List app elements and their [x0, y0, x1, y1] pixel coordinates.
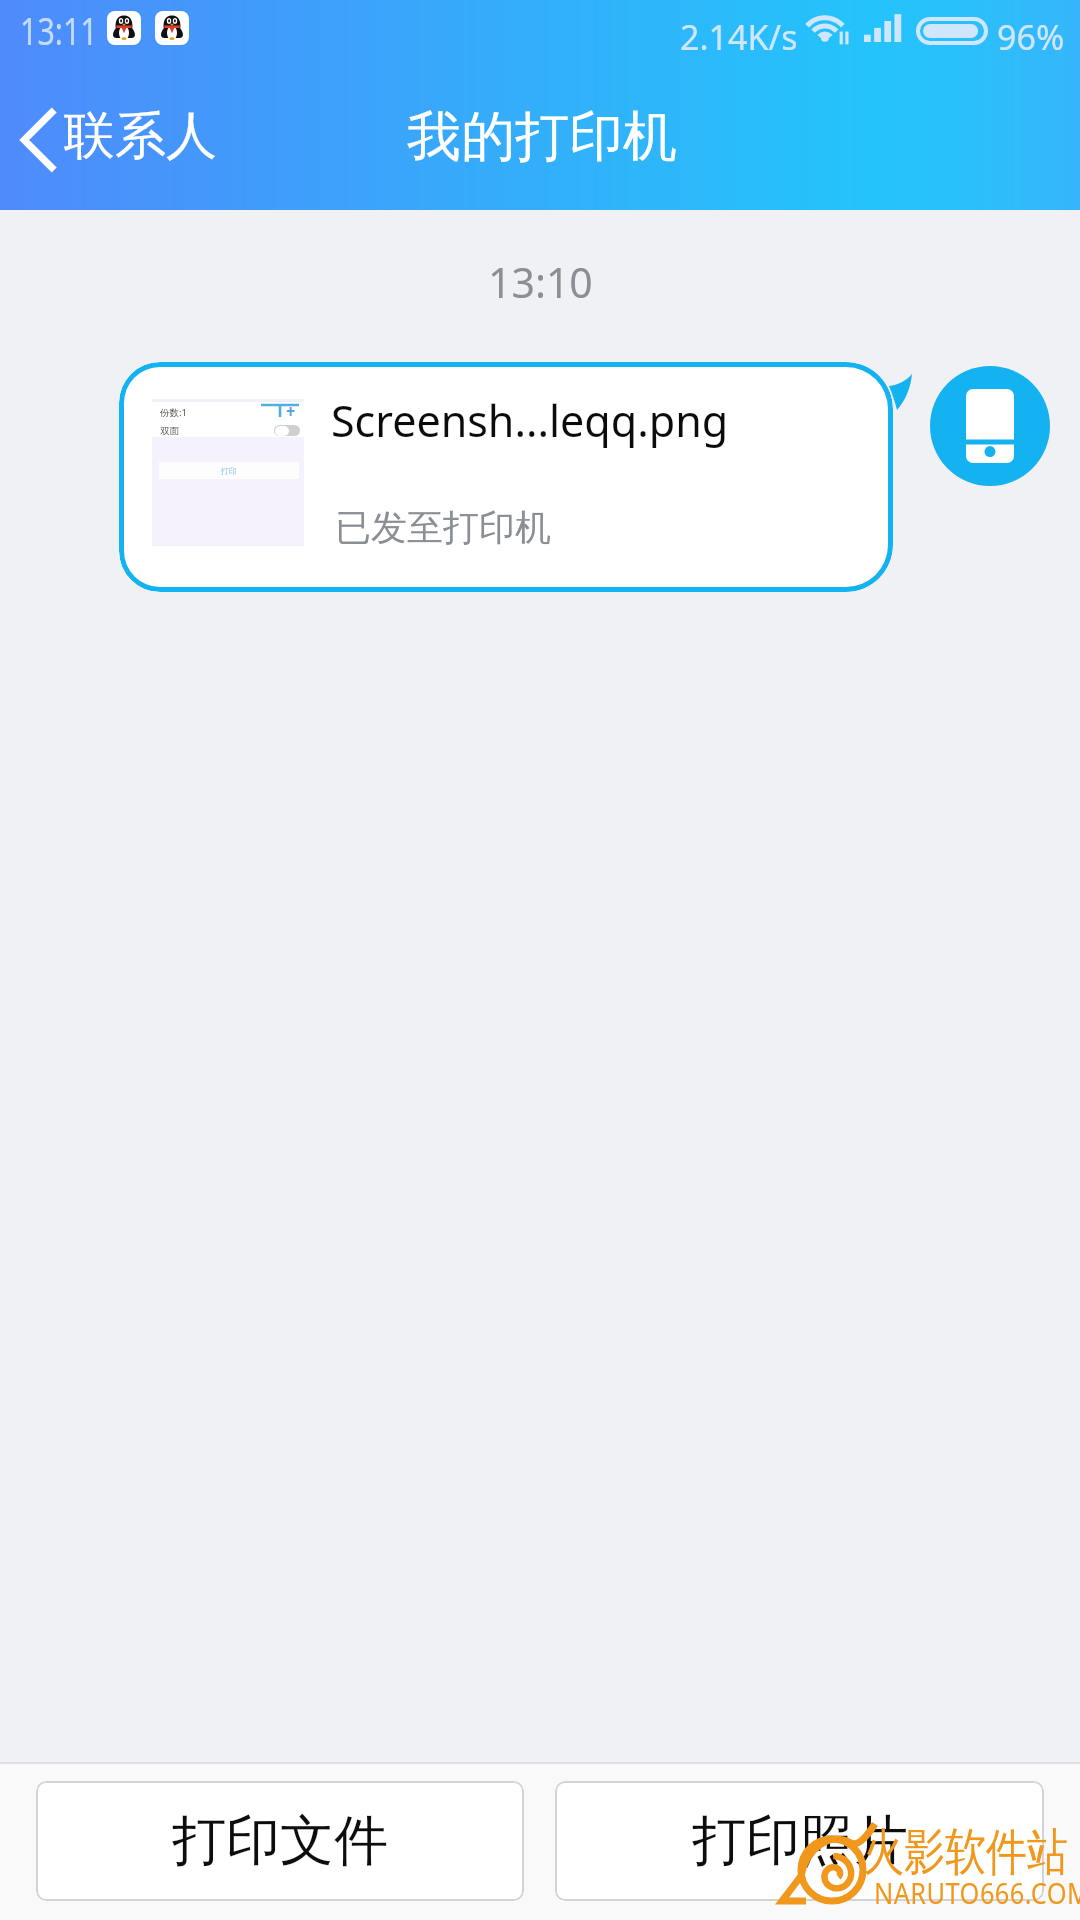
staticText: 13:10 [488, 254, 593, 310]
staticText: 打印照片 [692, 1807, 908, 1875]
button[interactable]: 份数:1 [119, 362, 893, 592]
staticText: 联系人 [64, 104, 217, 168]
staticText: Screensh...leqq.png [331, 391, 729, 450]
staticText: 2.14K/s [680, 14, 798, 60]
staticText: 双面 [160, 425, 179, 437]
staticText: NARUTO666.COM [874, 1873, 1080, 1912]
button[interactable]: Printer contact avatar [930, 366, 1050, 486]
staticText: 已发至打印机 [335, 505, 551, 550]
staticText: 打印 [221, 466, 237, 476]
staticText: 火影软件站 [863, 1821, 1068, 1884]
button[interactable]: 联系人 [0, 70, 241, 210]
staticText: 96% [997, 14, 1065, 60]
staticText: 我的打印机 [407, 103, 677, 171]
button[interactable]: 打印文件 [36, 1781, 524, 1901]
staticText: 13:11 [20, 4, 98, 56]
button[interactable]: 打印照片 [555, 1781, 1044, 1901]
staticText: 份数:1 [160, 406, 187, 419]
staticText: 打印文件 [172, 1807, 388, 1875]
